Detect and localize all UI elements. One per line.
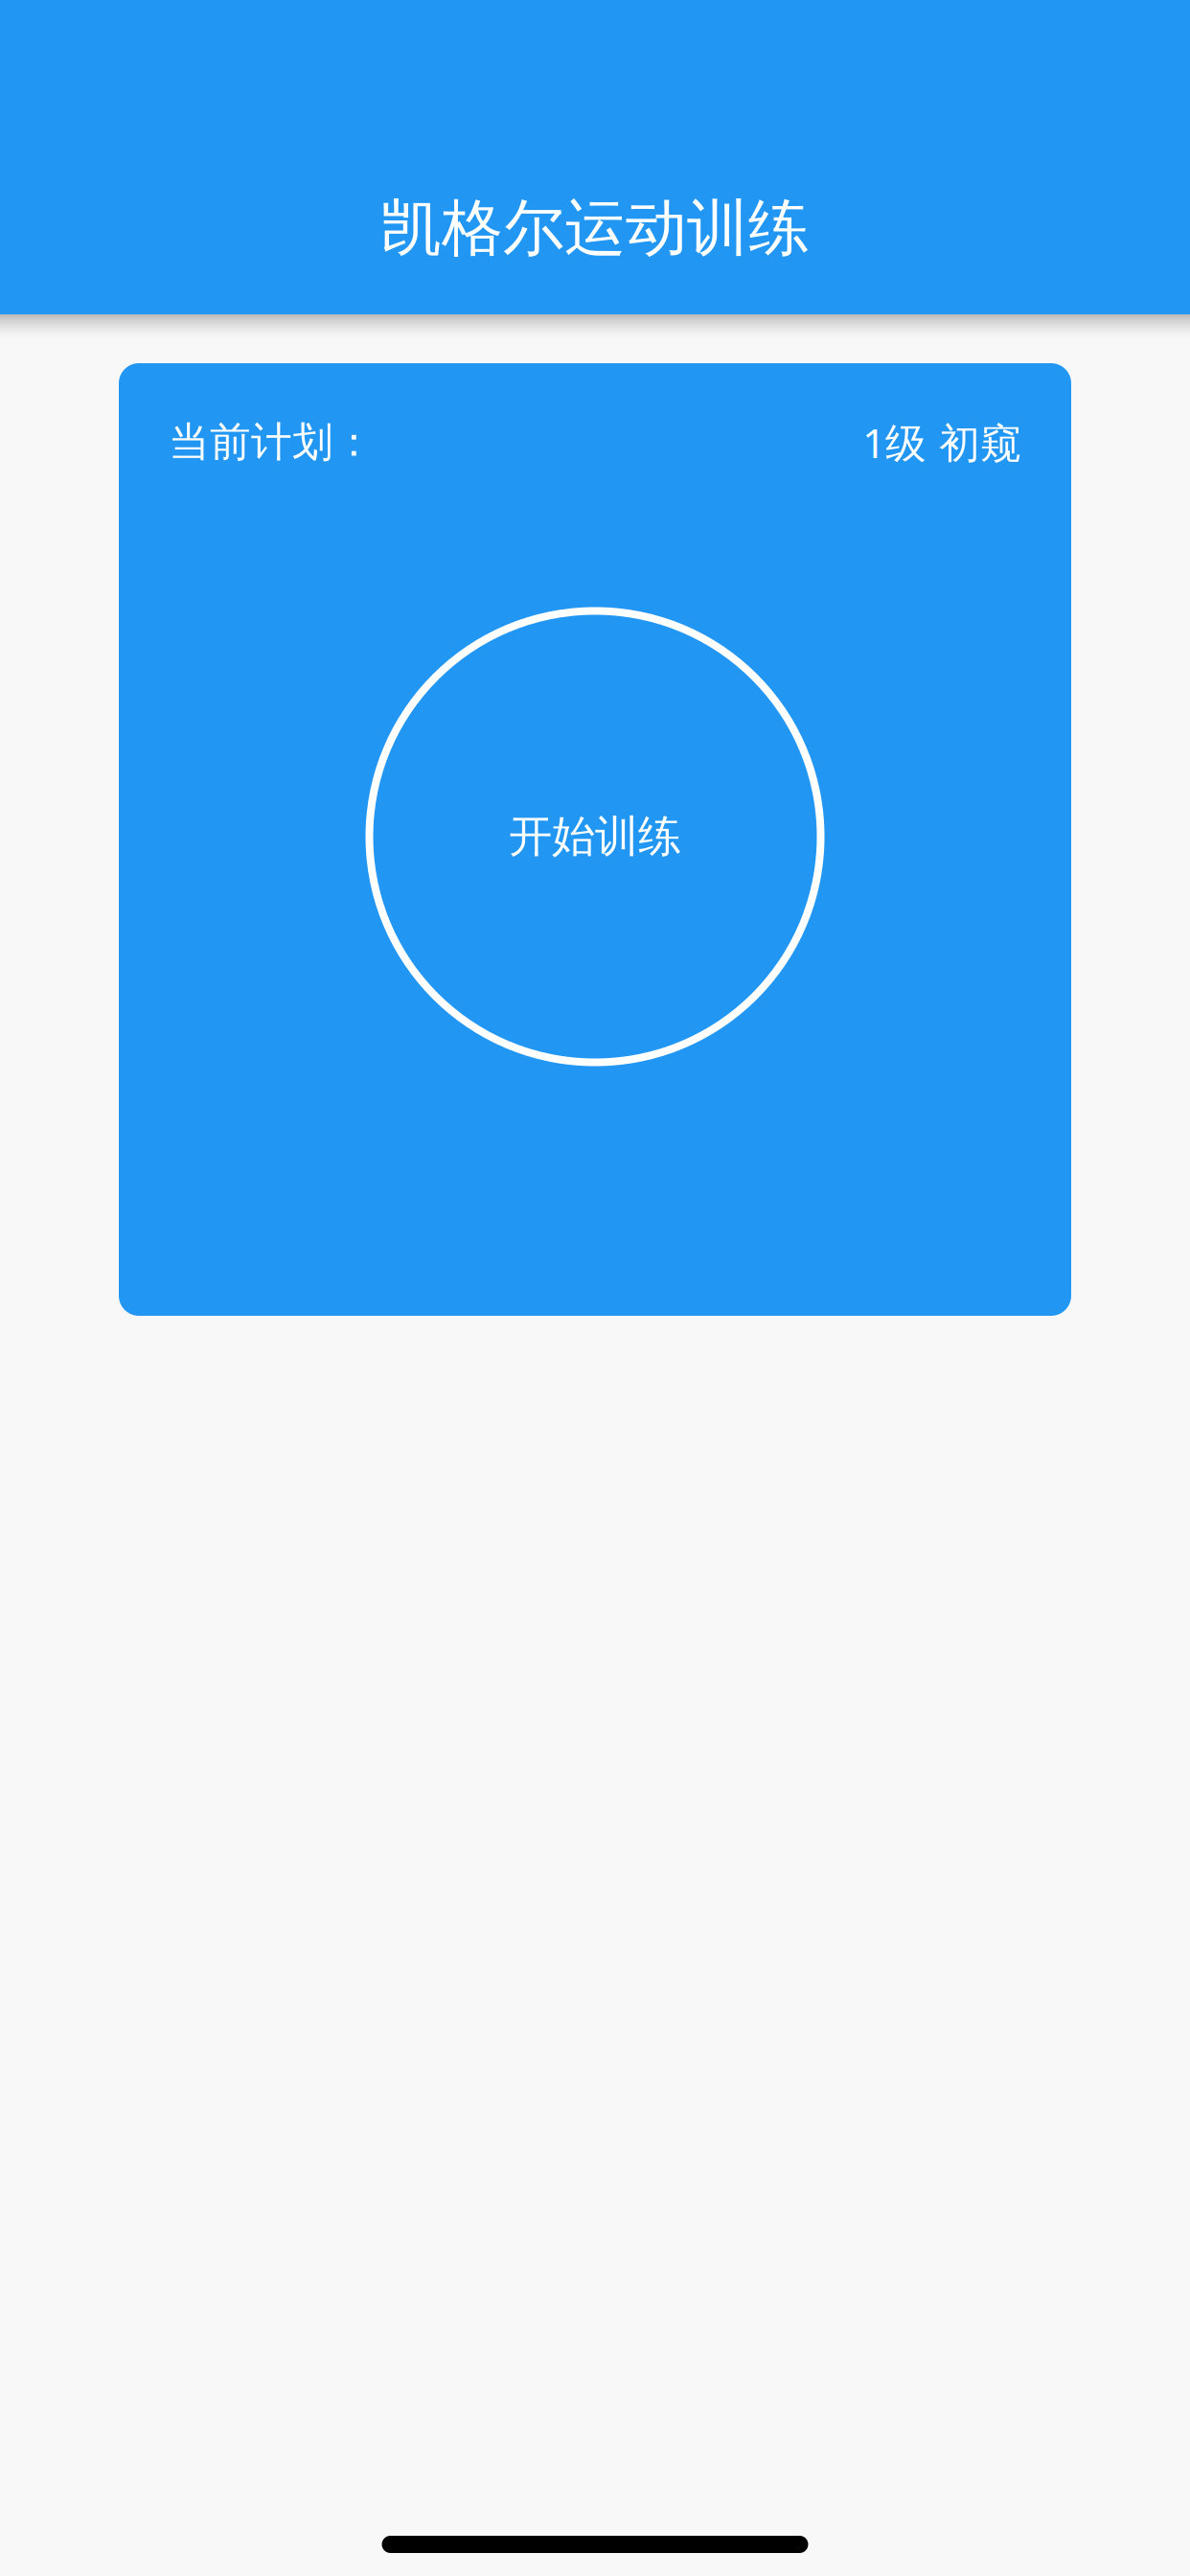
- staticText: 开始训练: [509, 810, 681, 863]
- button[interactable]: 开始训练: [369, 611, 821, 1062]
- staticText: 当前计划：: [169, 417, 375, 467]
- staticText: 1级 初窥: [862, 415, 1021, 469]
- button[interactable]: 当前计划：: [119, 363, 1071, 483]
- staticText: 凯格尔运动训练: [380, 191, 810, 266]
